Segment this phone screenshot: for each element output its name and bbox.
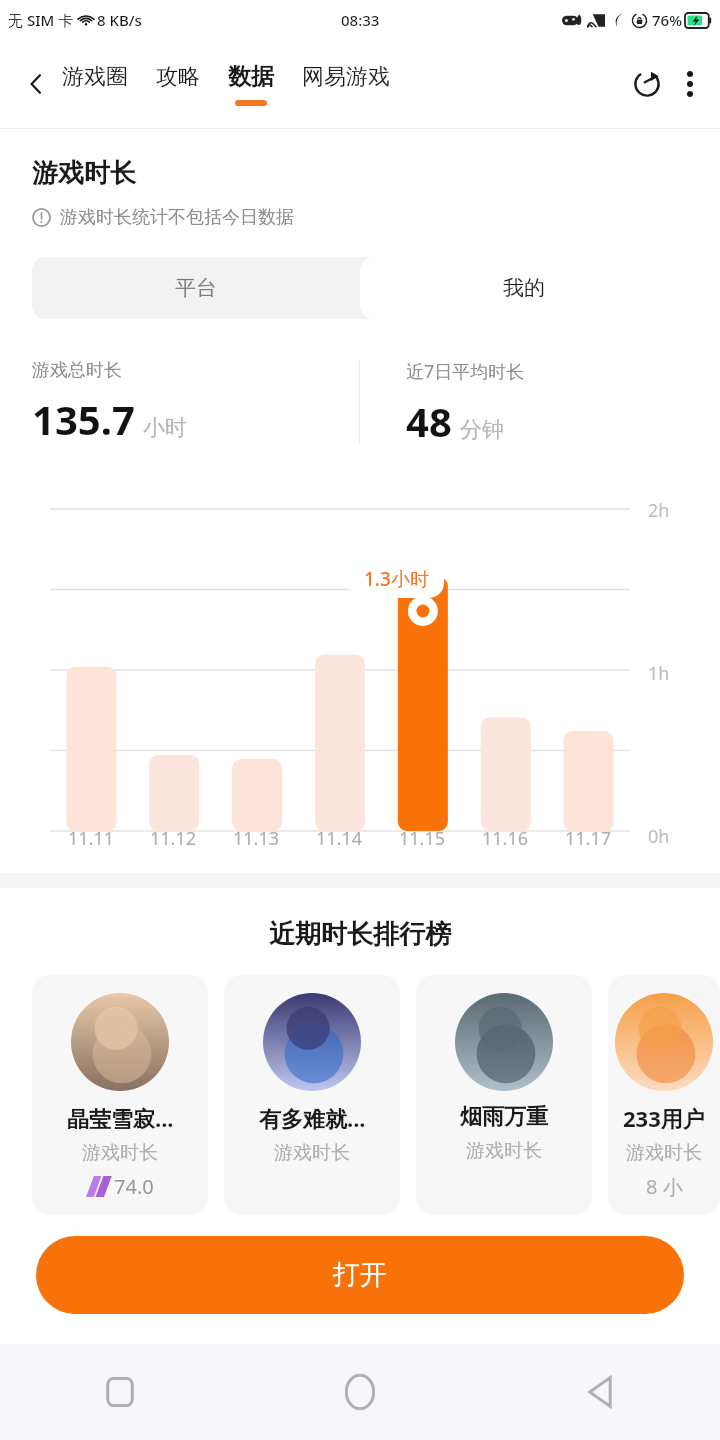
- staticText: 11.16: [482, 826, 529, 851]
- staticText: 76%: [652, 10, 682, 30]
- staticText: 游戏时长: [626, 1141, 702, 1165]
- staticText: 11.12: [150, 826, 197, 851]
- button[interactable]: 更多: [670, 64, 710, 104]
- button[interactable]: 有多难就...: [224, 975, 400, 1215]
- staticText: 烟雨万重: [460, 1103, 548, 1131]
- staticText: 游戏圈: [62, 63, 128, 91]
- button[interactable]: 主屏幕: [240, 1344, 480, 1440]
- staticText: 1.3小时: [364, 566, 429, 592]
- button[interactable]: 游戏圈: [60, 63, 130, 106]
- button[interactable]: 平台: [32, 257, 360, 319]
- staticText: 网易游戏: [302, 63, 390, 91]
- staticText: 48: [406, 394, 452, 448]
- staticText: 游戏时长: [274, 1141, 350, 1165]
- button[interactable]: 分享: [624, 61, 670, 107]
- staticText: 11.13: [233, 826, 280, 851]
- staticText: 攻略: [156, 63, 200, 91]
- staticText: 135.7: [32, 392, 135, 446]
- staticText: 我的: [503, 275, 545, 301]
- staticText: 74.0: [114, 1173, 154, 1200]
- staticText: 8 KB/s: [97, 10, 142, 30]
- staticText: 游戏时长统计不包括今日数据: [60, 206, 294, 229]
- staticText: 打开: [333, 1258, 387, 1292]
- staticText: 分钟: [460, 416, 504, 444]
- staticText: 晶莹雪寂...: [67, 1103, 174, 1133]
- staticText: 0h: [648, 824, 670, 849]
- staticText: 11.11: [68, 826, 115, 851]
- button[interactable]: 我的: [360, 257, 688, 319]
- staticText: 数据: [228, 62, 274, 91]
- button[interactable]: 网易游戏: [300, 63, 392, 106]
- staticText: 08:33: [341, 10, 380, 30]
- staticText: 近7日平均时长: [406, 359, 525, 384]
- staticText: 游戏时长: [466, 1139, 542, 1163]
- staticText: 1h: [648, 661, 670, 686]
- staticText: 游戏时长: [32, 157, 136, 190]
- staticText: 无 SIM 卡: [8, 10, 74, 30]
- staticText: 游戏总时长: [32, 359, 122, 382]
- button[interactable]: 打开: [36, 1236, 684, 1314]
- staticText: 233用户: [623, 1103, 705, 1133]
- staticText: 近期时长排行榜: [0, 918, 720, 951]
- staticText: 11.17: [565, 826, 612, 851]
- staticText: 平台: [175, 275, 217, 301]
- staticText: 游戏时长: [82, 1141, 158, 1165]
- staticText: 8 小: [646, 1173, 683, 1200]
- button[interactable]: 返回: [14, 62, 58, 106]
- staticText: 11.14: [316, 826, 363, 851]
- button[interactable]: 返回: [480, 1344, 720, 1440]
- button[interactable]: 攻略: [154, 63, 202, 106]
- staticText: 2h: [648, 498, 670, 523]
- staticText: 11.15: [399, 826, 446, 851]
- button[interactable]: 晶莹雪寂...: [32, 975, 208, 1215]
- staticText: 小时: [143, 414, 187, 442]
- button[interactable]: 烟雨万重: [416, 975, 592, 1215]
- button[interactable]: 最近任务: [0, 1344, 240, 1440]
- button[interactable]: 数据: [226, 62, 276, 106]
- staticText: 有多难就...: [259, 1103, 366, 1133]
- button[interactable]: 233用户: [608, 975, 720, 1215]
